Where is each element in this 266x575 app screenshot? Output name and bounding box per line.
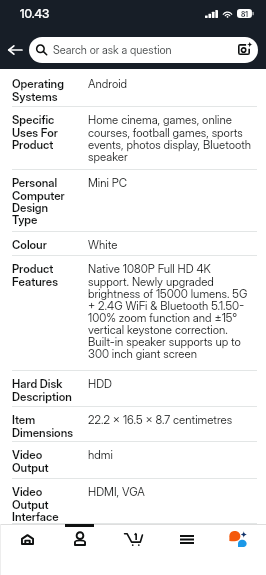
staticText: 81: [241, 10, 249, 18]
staticText: Personal Computer Design Type: [12, 176, 88, 227]
staticText: Video Output: [12, 448, 88, 475]
staticText: Mini PC: [88, 176, 128, 190]
staticText: HDMI, VGA: [88, 485, 145, 499]
staticText: Native 1080P Full HD 4K support. Newly u…: [88, 262, 248, 361]
other: Search by image: [238, 42, 252, 55]
staticText: hdmi: [88, 448, 113, 462]
staticText: Hard Disk Description: [12, 377, 88, 404]
button[interactable]: Back: [1, 37, 28, 63]
staticText: Operating Systems: [12, 77, 88, 104]
button[interactable]: Search or ask a question: [29, 37, 258, 63]
staticText: Specific Uses For Product: [12, 113, 88, 152]
staticText: Colour: [12, 238, 88, 252]
staticText: 10.43: [20, 6, 50, 21]
button[interactable]: Home: [6, 526, 48, 552]
button[interactable]: Menu: [166, 526, 208, 552]
staticText: Home cinema, games, online courses, foot…: [88, 113, 252, 164]
staticText: Video Output Interface: [12, 485, 88, 524]
staticText: Item Dimensions: [12, 413, 88, 440]
button[interactable]: Rufus assistant: [217, 526, 259, 552]
button[interactable]: Cart: [112, 526, 154, 552]
staticText: Search or ask a question: [53, 43, 172, 56]
staticText: HDD: [88, 377, 112, 391]
button[interactable]: Your account: [59, 526, 101, 552]
staticText: 22.2 x 16.5 x 8.7 centimetres: [88, 413, 233, 427]
staticText: Android: [88, 77, 128, 91]
staticText: White: [88, 238, 118, 252]
staticText: Product Features: [12, 262, 88, 289]
